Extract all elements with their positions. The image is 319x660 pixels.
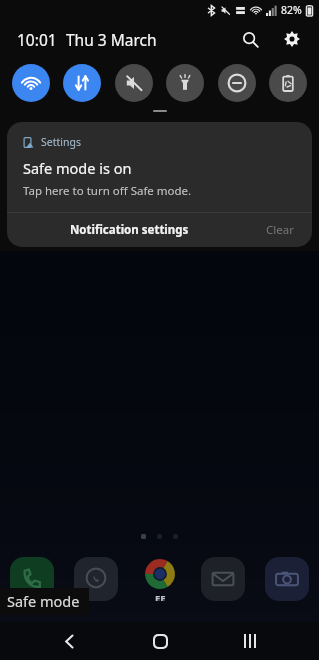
button[interactable]: EE browser <box>138 557 182 601</box>
button[interactable]: Email <box>201 557 245 601</box>
button[interactable]: Settings <box>7 122 312 212</box>
staticText: Settings <box>41 135 81 149</box>
staticText: Tap here to turn off Safe mode. <box>23 183 192 199</box>
button[interactable]: Clear <box>252 222 308 238</box>
button[interactable]: Notification settings <box>7 213 252 247</box>
staticText: Safe mode is on <box>23 158 132 178</box>
button[interactable]: Settings <box>277 24 307 54</box>
button[interactable]: Sound off <box>115 64 153 102</box>
button[interactable]: Flashlight <box>166 64 204 102</box>
button[interactable]: Phone <box>10 557 54 601</box>
button[interactable]: Mobile data <box>63 64 101 102</box>
staticText: 82% <box>281 3 302 17</box>
staticText: Clear <box>266 222 294 238</box>
button[interactable]: Camera <box>265 557 309 601</box>
staticText: EE <box>155 592 166 601</box>
staticText: 10:01 <box>17 29 57 50</box>
button[interactable]: Power saving <box>269 64 307 102</box>
button[interactable]: Back <box>47 622 91 660</box>
staticText: Thu 3 March <box>66 29 157 50</box>
button[interactable]: Do not disturb <box>218 64 256 102</box>
staticText: Notification settings <box>70 222 189 238</box>
button[interactable]: Search <box>235 24 265 54</box>
button[interactable]: Wi-Fi <box>12 64 50 102</box>
button[interactable]: Recent apps <box>228 622 272 660</box>
staticText: Safe mode <box>7 591 80 611</box>
button[interactable]: Home <box>138 622 182 660</box>
button[interactable]: WhatsApp <box>74 557 118 601</box>
